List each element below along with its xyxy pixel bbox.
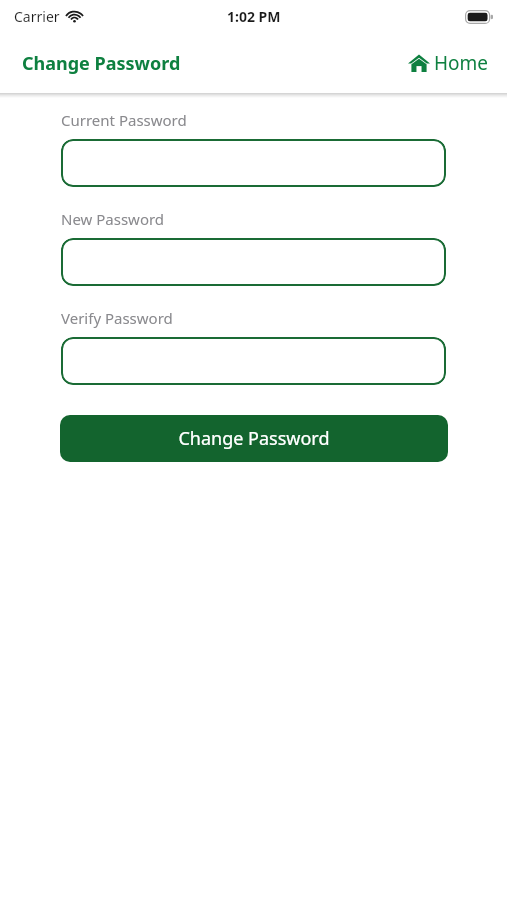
button[interactable] (61, 337, 446, 385)
button[interactable] (61, 238, 446, 286)
staticText: New Password (61, 209, 165, 229)
button[interactable]: Change Password (60, 415, 448, 462)
staticText: Change Password (22, 51, 181, 76)
staticText: Current Password (61, 110, 187, 130)
button[interactable] (61, 139, 446, 187)
staticText: 1:02 PM (227, 7, 281, 26)
staticText: Home (434, 50, 489, 76)
staticText: Change Password (178, 426, 330, 451)
staticText: Verify Password (61, 308, 173, 328)
other: Home (408, 53, 430, 73)
button[interactable]: Home (408, 50, 489, 76)
staticText: Carrier (14, 7, 60, 26)
